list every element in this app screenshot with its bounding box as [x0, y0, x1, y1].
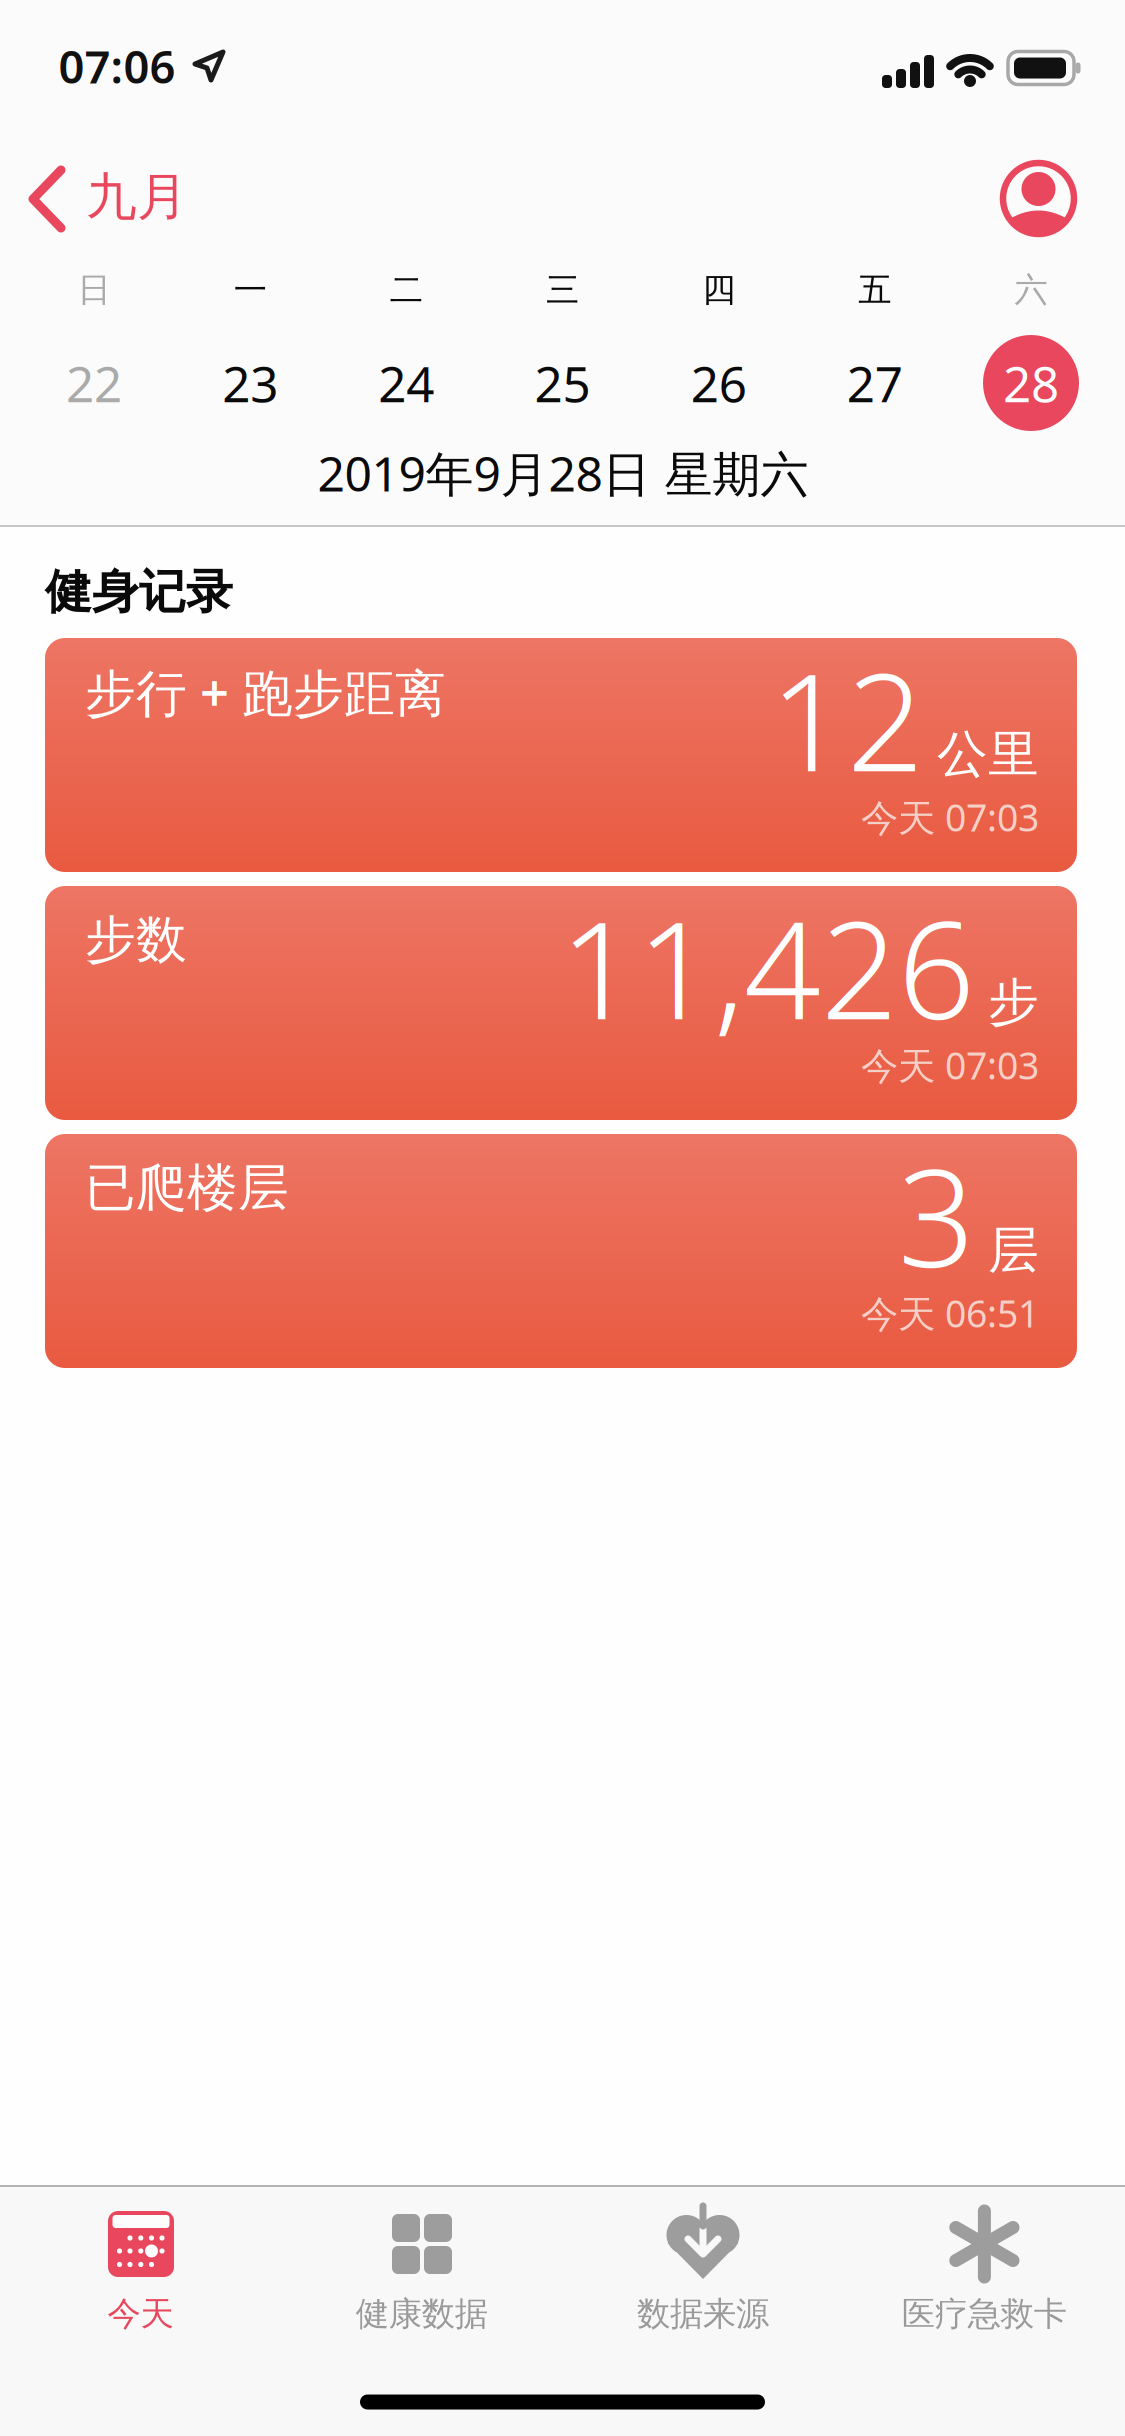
button[interactable]: 25	[484, 333, 640, 433]
button[interactable]: 23	[172, 333, 328, 433]
staticText: 25	[534, 350, 590, 416]
button[interactable]: 医疗急救卡	[844, 2167, 1125, 2357]
button[interactable]: 个人资料	[988, 148, 1088, 248]
staticText: 数据来源	[637, 2293, 769, 2334]
staticText: 三	[546, 269, 579, 310]
button[interactable]: 22	[16, 333, 172, 433]
staticText: 日	[78, 269, 111, 310]
staticText: 四	[702, 269, 735, 310]
staticText: 步数	[85, 909, 187, 971]
staticText: 医疗急救卡	[902, 2293, 1067, 2334]
staticText: 一	[234, 269, 267, 310]
staticText: 27	[847, 350, 903, 416]
staticText: 健康数据	[356, 2293, 488, 2334]
staticText: 22	[66, 350, 122, 416]
staticText: 24	[378, 350, 434, 416]
button[interactable]: 数据来源	[562, 2167, 844, 2357]
staticText: 二	[390, 269, 423, 310]
button[interactable]: 24	[328, 333, 484, 433]
staticText: 今天 07:03	[861, 1040, 1039, 1090]
staticText: 3	[898, 1126, 975, 1304]
staticText: 11,426	[560, 878, 975, 1056]
staticText: 已爬楼层	[85, 1157, 289, 1219]
button[interactable]: 27	[797, 333, 953, 433]
staticText: 今天	[108, 2293, 174, 2334]
staticText: 公里	[937, 723, 1039, 785]
staticText: 步行 + 跑步距离	[85, 658, 446, 726]
staticText: 2019年9月28日 星期六	[317, 441, 808, 505]
button[interactable]: 健康数据	[281, 2167, 562, 2357]
staticText: 九月	[86, 166, 188, 228]
staticText: 今天 07:03	[861, 792, 1039, 842]
staticText: 28	[1003, 350, 1059, 416]
staticText: 五	[858, 269, 891, 310]
button[interactable]: 步数	[45, 886, 1077, 1120]
button[interactable]: 26	[641, 333, 797, 433]
staticText: 07:06	[58, 36, 175, 96]
staticText: 26	[691, 350, 747, 416]
staticText: 层	[988, 1219, 1039, 1281]
staticText: 健身记录	[45, 563, 233, 621]
button[interactable]: 今天	[0, 2167, 281, 2357]
button[interactable]: 28	[953, 333, 1109, 433]
staticText: 步	[988, 971, 1039, 1033]
staticText: 六	[1014, 269, 1047, 310]
button[interactable]: 步行 + 跑步距离	[45, 638, 1077, 872]
button[interactable]: 已爬楼层	[45, 1134, 1077, 1368]
staticText: 12	[770, 630, 924, 808]
staticText: 23	[222, 350, 278, 416]
button[interactable]: 返回九月	[15, 158, 195, 238]
staticText: 今天 06:51	[861, 1288, 1039, 1338]
